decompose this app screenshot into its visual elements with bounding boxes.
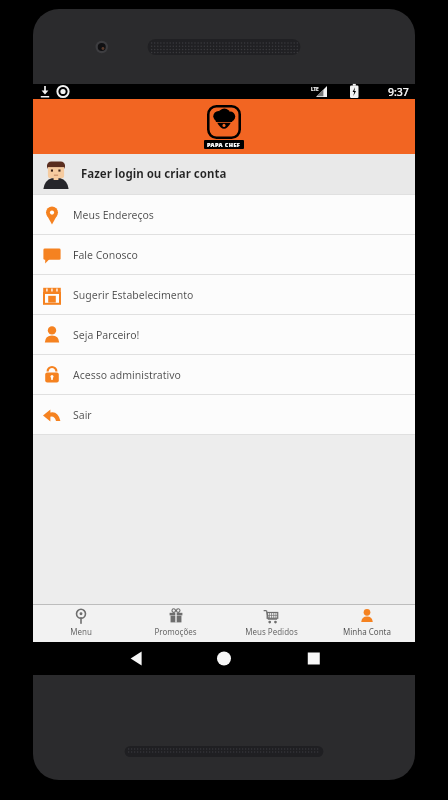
button[interactable]: Promoções bbox=[128, 605, 223, 642]
button[interactable]: Menu bbox=[33, 605, 128, 642]
staticText: Acesso administrativo bbox=[73, 368, 181, 382]
staticText: Meus Endereços bbox=[73, 208, 154, 222]
button[interactable]: Fale Conosco bbox=[33, 235, 415, 274]
staticText: Seja Parceiro! bbox=[73, 328, 140, 342]
staticText: Fale Conosco bbox=[73, 248, 138, 262]
button[interactable]: Sugerir Estabelecimento bbox=[33, 275, 415, 314]
staticText: Sugerir Estabelecimento bbox=[73, 288, 194, 302]
staticText: Meus Pedidos bbox=[245, 626, 298, 637]
button[interactable]: Minha Conta bbox=[319, 605, 415, 642]
button[interactable]: Fazer login ou criar conta bbox=[33, 154, 415, 194]
staticText: Promoções bbox=[154, 626, 197, 637]
button[interactable]: Sair bbox=[33, 395, 415, 434]
staticText: Fazer login ou criar conta bbox=[81, 166, 227, 182]
button[interactable]: Acesso administrativo bbox=[33, 355, 415, 394]
staticText: Sair bbox=[73, 408, 92, 422]
button[interactable]: Seja Parceiro! bbox=[33, 315, 415, 354]
staticText: LTE bbox=[311, 86, 319, 92]
staticText: 9:37 bbox=[388, 85, 409, 99]
staticText: PAPA CHEF bbox=[207, 141, 241, 148]
button[interactable]: Meus Endereços bbox=[33, 195, 415, 234]
staticText: Menu bbox=[70, 626, 92, 637]
button[interactable]: Meus Pedidos bbox=[223, 605, 319, 642]
staticText: Minha Conta bbox=[343, 626, 391, 637]
